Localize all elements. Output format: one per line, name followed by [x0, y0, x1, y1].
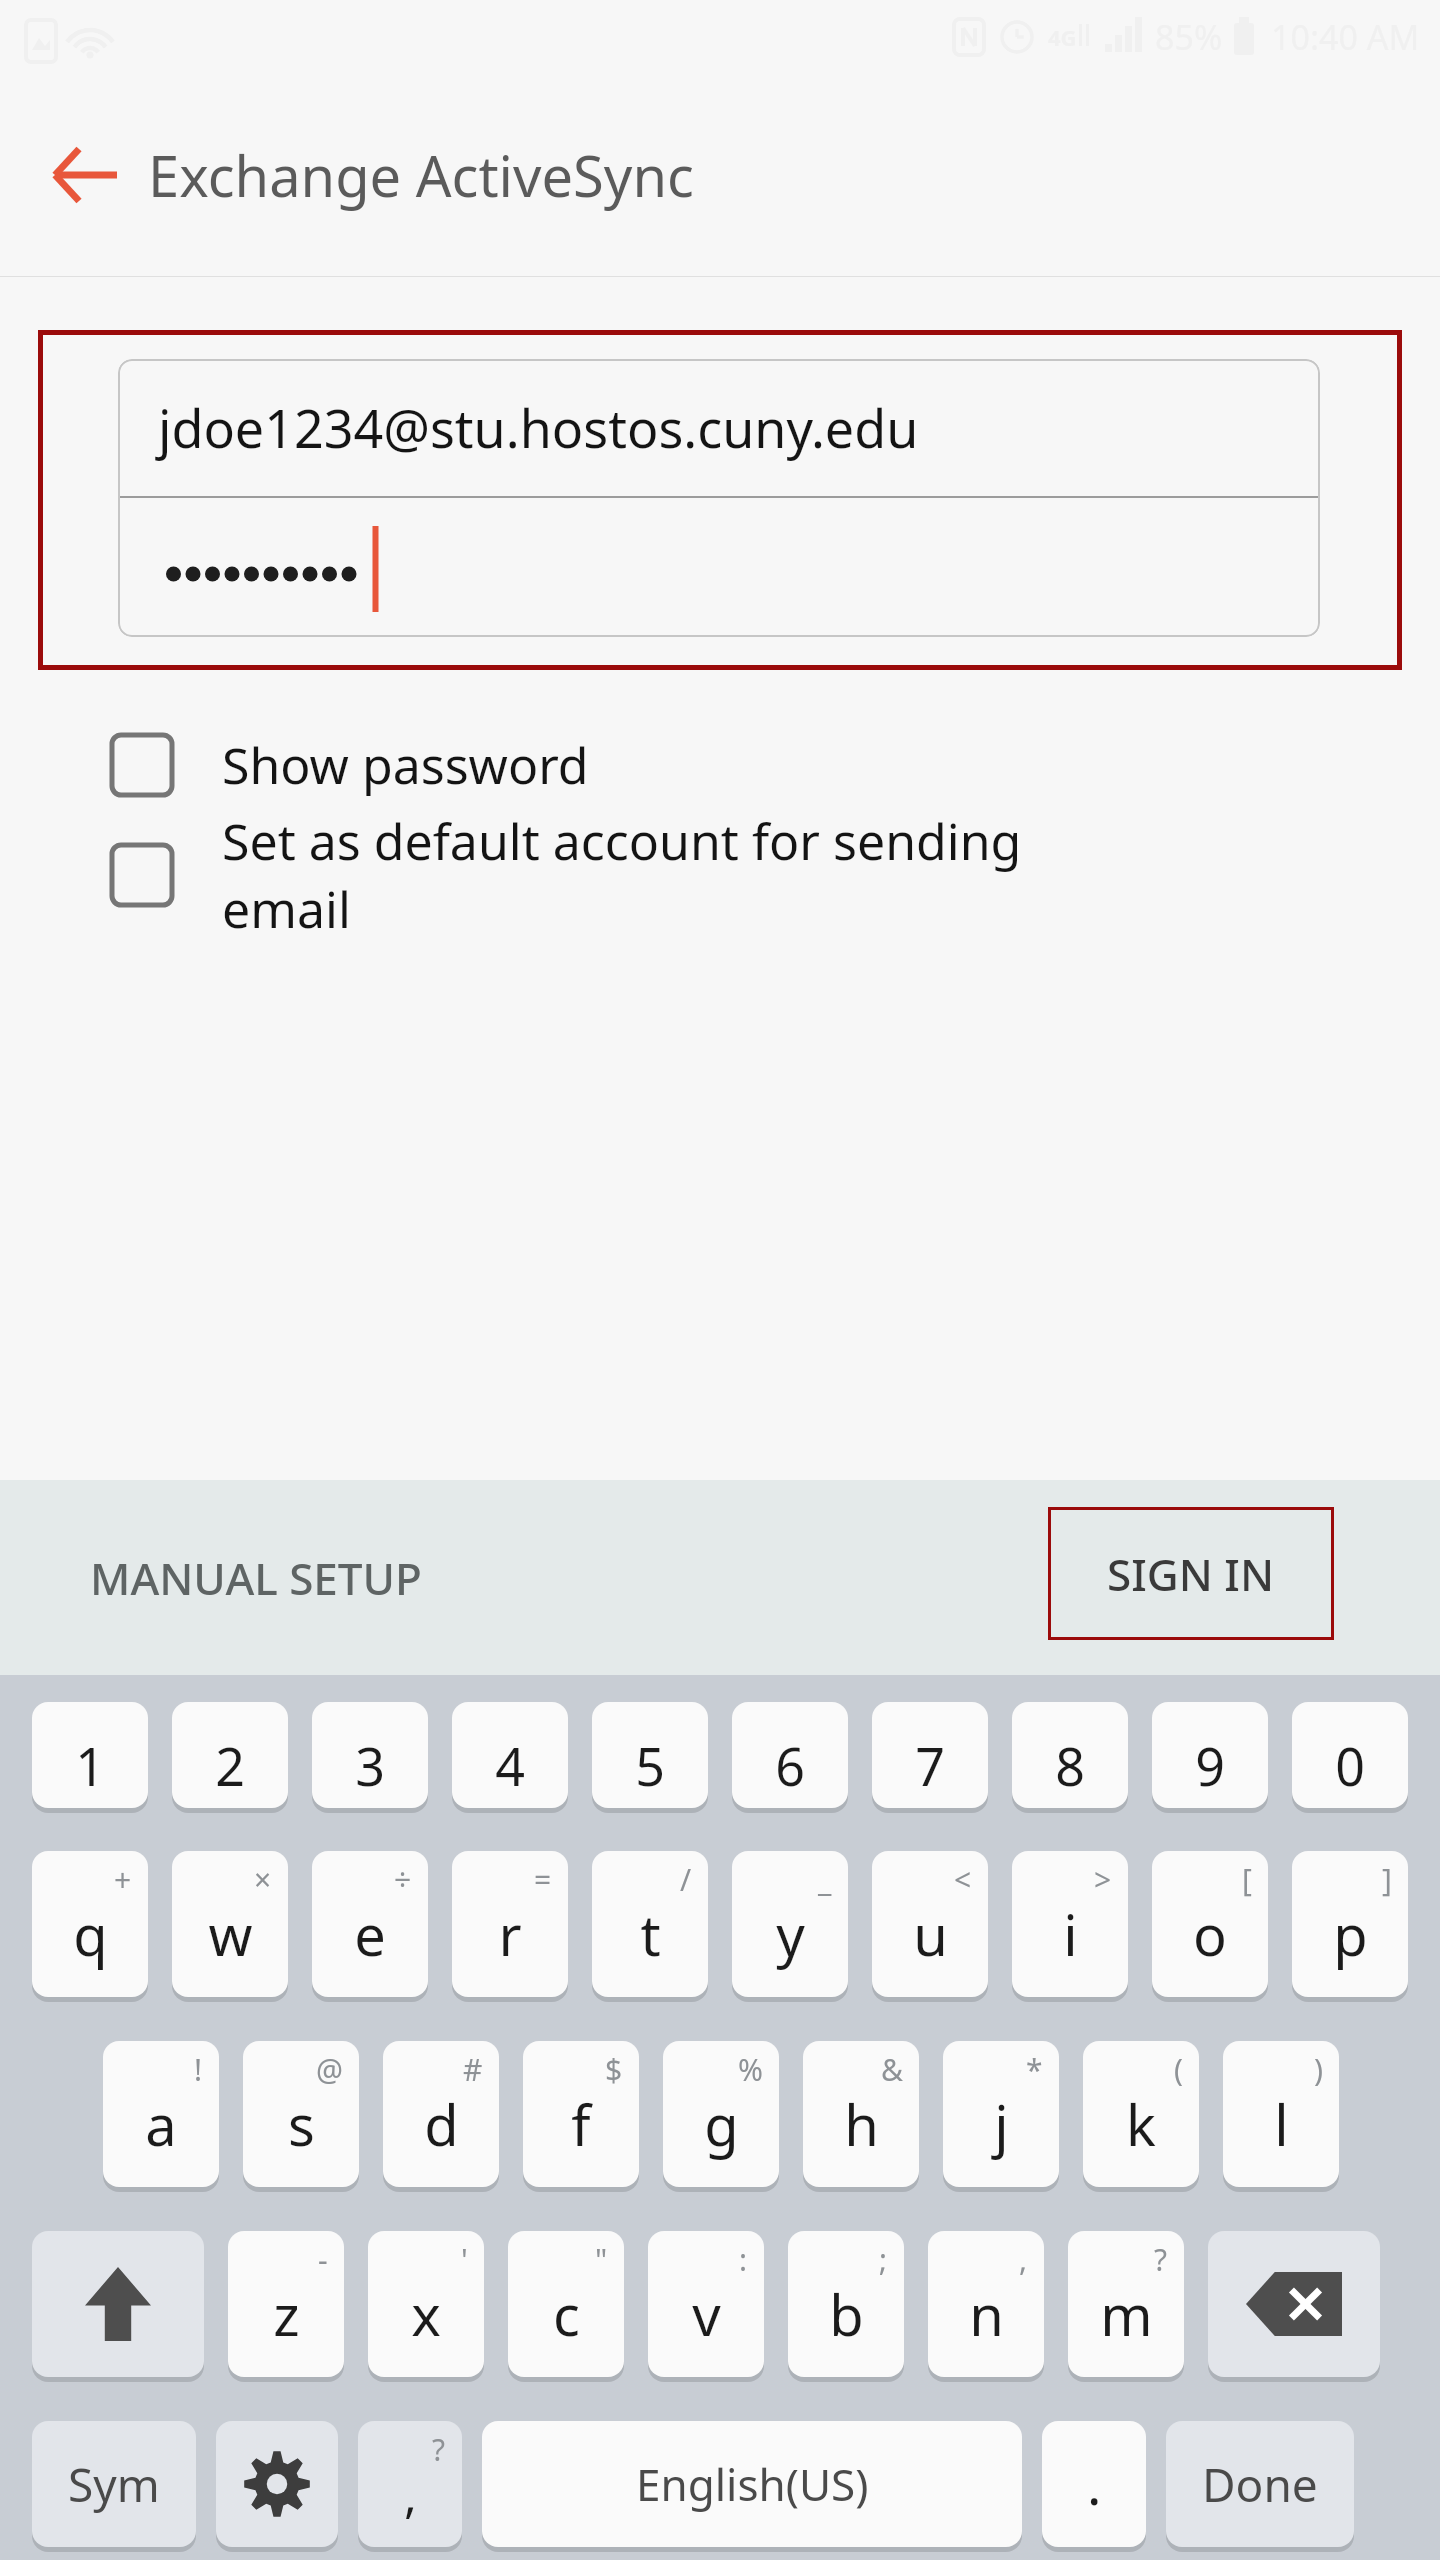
button[interactable]: j	[943, 2041, 1059, 2187]
staticText: ×	[254, 1859, 272, 1900]
button[interactable]: 5	[592, 1702, 708, 1808]
button[interactable]: z	[228, 2231, 344, 2377]
staticText: o	[1193, 1896, 1227, 1972]
staticText: ,	[1019, 2239, 1028, 2280]
button[interactable]: k	[1083, 2041, 1199, 2187]
button[interactable]: n	[928, 2231, 1044, 2377]
button[interactable]: o	[1152, 1851, 1268, 1997]
staticText: ]	[1382, 1859, 1392, 1900]
button[interactable]: h	[803, 2041, 919, 2187]
staticText: -	[318, 2239, 328, 2280]
button[interactable]: y	[732, 1851, 848, 1997]
staticText: )	[1314, 2049, 1323, 2090]
staticText: *	[1026, 2049, 1043, 2090]
staticText: 0	[1335, 1730, 1365, 1801]
button[interactable]: x	[368, 2231, 484, 2377]
button[interactable]: 9	[1152, 1702, 1268, 1808]
staticText: c	[553, 2276, 580, 2352]
staticText: SIGN IN	[1107, 1544, 1275, 1604]
staticText: MANUAL SETUP	[90, 1548, 422, 1608]
button[interactable]: 1	[32, 1702, 148, 1808]
button[interactable]: d	[383, 2041, 499, 2187]
staticText: k	[1126, 2086, 1156, 2162]
staticText: !	[194, 2049, 203, 2090]
staticText: "	[595, 2239, 608, 2280]
button[interactable]: 7	[872, 1702, 988, 1808]
button[interactable]: l	[1223, 2041, 1339, 2187]
button[interactable]: g	[663, 2041, 779, 2187]
staticText: 2	[215, 1730, 245, 1801]
staticText: Show password	[222, 731, 589, 799]
button[interactable]: 2	[172, 1702, 288, 1808]
button[interactable]: t	[592, 1851, 708, 1997]
button[interactable]: m	[1068, 2231, 1184, 2377]
button[interactable]: Comma	[358, 2421, 462, 2547]
button[interactable]: q	[32, 1851, 148, 1997]
button[interactable]: Back	[38, 129, 130, 221]
staticText: 5	[635, 1730, 665, 1801]
button[interactable]: Set as default account for sending email	[110, 795, 1290, 955]
staticText: Sym	[68, 2453, 160, 2516]
staticText: h	[844, 2086, 879, 2162]
button[interactable]: s	[243, 2041, 359, 2187]
staticText: t	[640, 1896, 661, 1972]
button[interactable]: Space	[482, 2421, 1022, 2547]
staticText: Exchange ActiveSync	[148, 137, 694, 213]
staticText: 7	[915, 1730, 945, 1801]
staticText: f	[571, 2086, 591, 2162]
staticText: x	[411, 2276, 441, 2352]
button[interactable]: SIGN IN	[1048, 1507, 1334, 1640]
staticText: r	[498, 1896, 522, 1972]
button[interactable]: f	[523, 2041, 639, 2187]
button[interactable]: p	[1292, 1851, 1408, 1997]
staticText: 4	[495, 1730, 525, 1801]
button[interactable]: r	[452, 1851, 568, 1997]
staticText: ,	[404, 2462, 417, 2527]
staticText: <	[954, 1859, 972, 1900]
button[interactable]: 3	[312, 1702, 428, 1808]
button[interactable]: 8	[1012, 1702, 1128, 1808]
button[interactable]: MANUAL SETUP	[90, 1518, 422, 1638]
staticText: ?	[432, 2429, 446, 2470]
staticText: q	[73, 1896, 108, 1972]
staticText: (	[1174, 2049, 1183, 2090]
button[interactable]: Done	[1166, 2421, 1354, 2547]
button[interactable]: u	[872, 1851, 988, 1997]
staticText: jdoe1234@stu.hostos.cuny.edu	[158, 392, 919, 463]
staticText: j	[994, 2086, 1009, 2162]
staticText: u	[913, 1896, 948, 1972]
staticText: '	[461, 2239, 468, 2280]
button[interactable]: Period	[1042, 2421, 1146, 2547]
staticText: .	[1087, 2447, 1102, 2521]
staticText: d	[424, 2086, 459, 2162]
button[interactable]: Shift	[32, 2231, 204, 2377]
staticText: >	[1094, 1859, 1112, 1900]
staticText: /	[680, 1859, 692, 1900]
staticText: 9	[1195, 1730, 1225, 1801]
staticText: 1	[75, 1730, 105, 1801]
button[interactable]: i	[1012, 1851, 1128, 1997]
staticText: [	[1242, 1859, 1252, 1900]
button[interactable]: 6	[732, 1702, 848, 1808]
staticText: p	[1333, 1896, 1368, 1972]
button[interactable]: a	[103, 2041, 219, 2187]
button[interactable]: b	[788, 2231, 904, 2377]
button[interactable]: jdoe1234@stu.hostos.cuny.edu	[118, 359, 1320, 496]
staticText: +	[114, 1859, 132, 1900]
staticText: l	[1274, 2086, 1289, 2162]
button[interactable]: Keyboard settings	[216, 2421, 338, 2547]
button[interactable]: Show password	[110, 711, 1290, 819]
button[interactable]: c	[508, 2231, 624, 2377]
staticText: ?	[1154, 2239, 1168, 2280]
button[interactable]: w	[172, 1851, 288, 1997]
button[interactable]	[118, 498, 1320, 637]
staticText: :	[739, 2239, 748, 2280]
button[interactable]: 0	[1292, 1702, 1408, 1808]
staticText: 3	[355, 1730, 385, 1801]
button[interactable]: Backspace	[1208, 2231, 1380, 2377]
button[interactable]: 4	[452, 1702, 568, 1808]
button[interactable]: Symbols	[32, 2421, 196, 2547]
button[interactable]: v	[648, 2231, 764, 2377]
button[interactable]: e	[312, 1851, 428, 1997]
